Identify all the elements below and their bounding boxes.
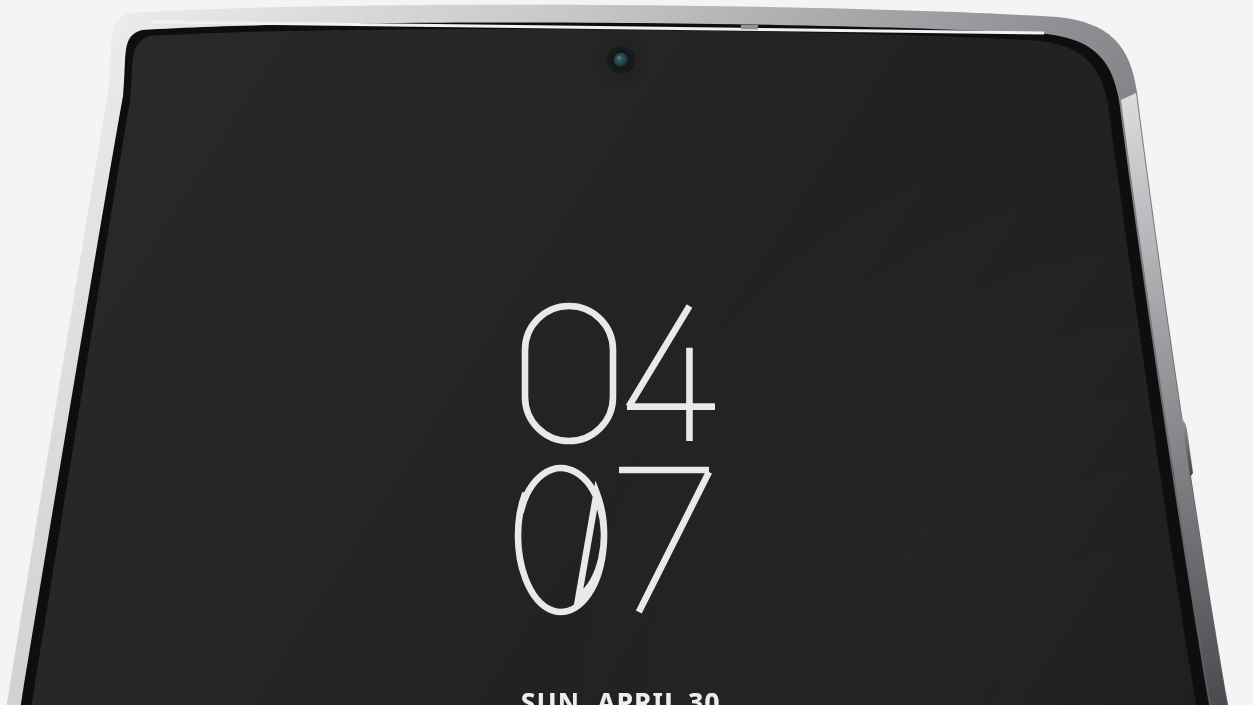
button[interactable]: Always-on display clock, 04:37, Sunday A… <box>0 0 1253 705</box>
